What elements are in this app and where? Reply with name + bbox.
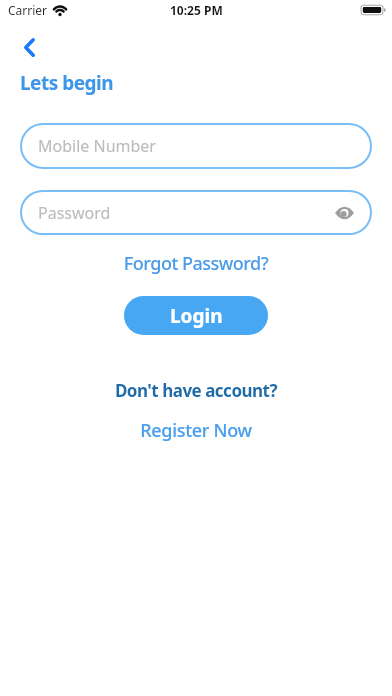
button[interactable] [16, 31, 42, 63]
staticText: Don't have account? [0, 379, 392, 402]
staticText: Carrier [8, 2, 48, 18]
button[interactable] [334, 203, 354, 223]
staticText: Password [38, 202, 111, 224]
button[interactable]: Password [20, 190, 372, 235]
button[interactable]: Register Now [0, 418, 392, 443]
staticText: Mobile Number [38, 135, 156, 157]
staticText: 10:25 PM [170, 2, 223, 18]
staticText: Login [170, 303, 223, 329]
button[interactable]: Login [124, 296, 268, 335]
button[interactable]: Mobile Number [20, 123, 372, 169]
staticText: Lets begin [20, 70, 114, 96]
button[interactable]: Forgot Password? [0, 251, 392, 276]
